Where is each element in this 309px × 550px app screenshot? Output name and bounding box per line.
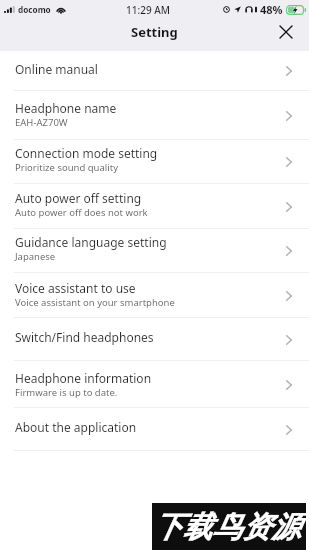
button[interactable]: Auto power off setting <box>0 184 309 229</box>
button[interactable]: Switch/Find headphones <box>0 318 309 361</box>
button[interactable]: Online manual <box>0 51 309 91</box>
staticText: Japanese <box>15 250 56 263</box>
staticText: Connection mode setting <box>15 145 158 161</box>
staticText: 48% <box>260 2 283 17</box>
staticText: Headphone name <box>15 100 117 116</box>
button[interactable]: Headphone name <box>0 91 309 140</box>
staticText: Online manual <box>15 61 98 77</box>
staticText: 11:29 AM <box>126 3 170 17</box>
staticText: Setting <box>131 23 178 41</box>
staticText: Guidance language setting <box>15 234 167 250</box>
staticText: Voice assistant on your smartphone <box>15 296 175 309</box>
staticText: Voice assistant to use <box>15 280 136 296</box>
staticText: Headphone information <box>15 370 152 386</box>
button[interactable]: Guidance language setting <box>0 229 309 273</box>
button[interactable]: About the application <box>0 408 309 451</box>
staticText: Firmware is up to date. <box>15 386 118 399</box>
staticText: Auto power off setting <box>15 190 142 206</box>
staticText: docomo <box>18 4 51 15</box>
button[interactable]: Headphone information <box>0 361 309 408</box>
staticText: 下载鸟资源 <box>153 509 301 546</box>
staticText: Switch/Find headphones <box>15 329 154 345</box>
staticText: Prioritize sound quality <box>15 161 118 174</box>
staticText: About the application <box>15 419 137 435</box>
staticText: Auto power off does not work <box>15 206 148 219</box>
staticText: EAH-AZ70W <box>15 116 68 129</box>
button[interactable]: Connection mode setting <box>0 140 309 184</box>
button[interactable]: Close <box>274 20 298 44</box>
button[interactable]: Voice assistant to use <box>0 273 309 318</box>
